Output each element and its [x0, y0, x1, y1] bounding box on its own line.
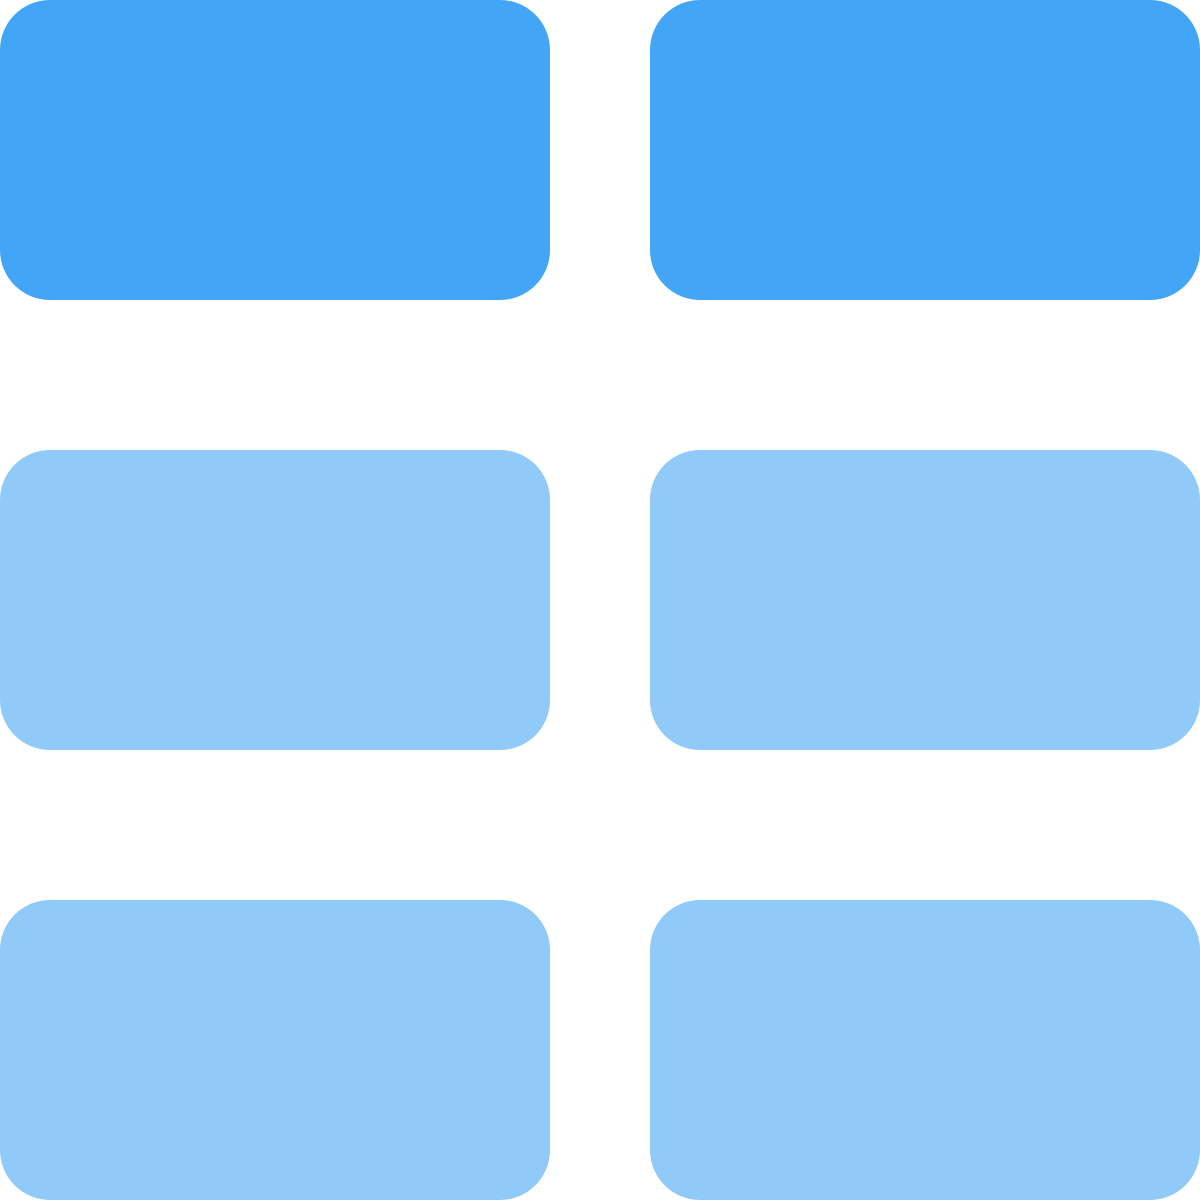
button[interactable]: Tile 4: [650, 450, 1200, 750]
button[interactable]: Tile 5: [0, 900, 550, 1200]
button[interactable]: Tile 1: [0, 0, 550, 300]
button[interactable]: Tile 6: [650, 900, 1200, 1200]
button[interactable]: Tile 3: [0, 450, 550, 750]
button[interactable]: Tile 2: [650, 0, 1200, 300]
